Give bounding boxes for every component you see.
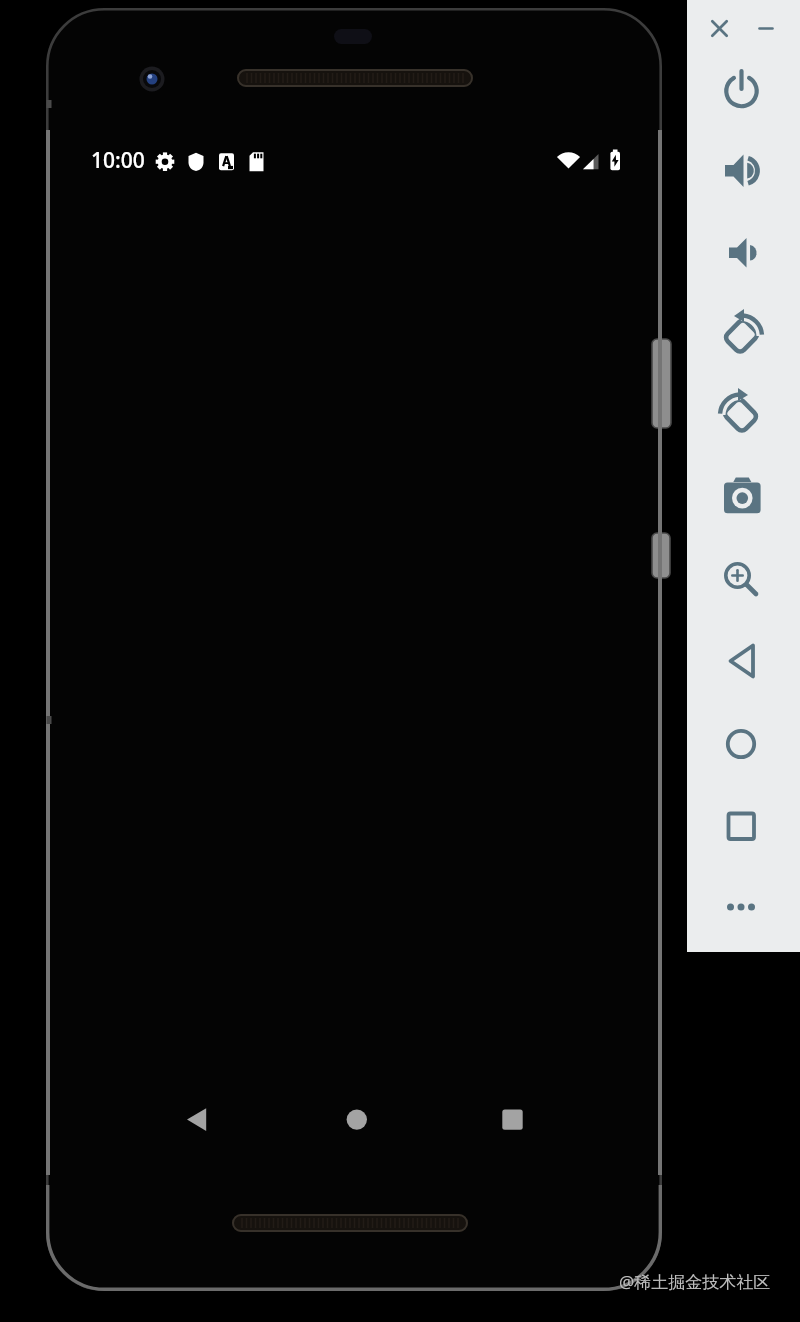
button[interactable] bbox=[717, 802, 765, 850]
staticText: @稀土掘金技术社区 bbox=[619, 1270, 771, 1293]
button[interactable] bbox=[717, 555, 765, 603]
button[interactable] bbox=[717, 392, 765, 440]
button[interactable] bbox=[337, 1100, 377, 1140]
button[interactable] bbox=[747, 8, 789, 48]
button[interactable] bbox=[717, 473, 765, 521]
button[interactable] bbox=[717, 67, 765, 115]
button[interactable] bbox=[717, 314, 765, 362]
button[interactable] bbox=[717, 883, 765, 931]
button[interactable] bbox=[178, 1100, 218, 1140]
button[interactable] bbox=[717, 720, 765, 768]
button[interactable] bbox=[717, 146, 765, 194]
staticText: 10:00 bbox=[91, 146, 145, 175]
button[interactable] bbox=[697, 8, 739, 48]
button[interactable] bbox=[492, 1100, 532, 1140]
button[interactable] bbox=[717, 229, 765, 277]
button[interactable] bbox=[717, 637, 765, 685]
